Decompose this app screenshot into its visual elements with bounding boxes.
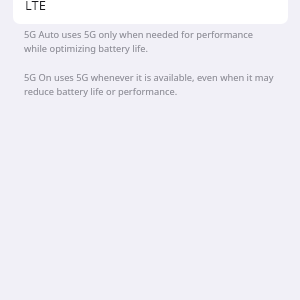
staticText: 5G On uses 5G whenever it is available, … bbox=[24, 71, 276, 98]
staticText: LTE bbox=[25, 0, 47, 14]
button[interactable]: LTE bbox=[13, 0, 288, 24]
staticText: 5G Auto uses 5G only when needed for per… bbox=[24, 28, 276, 55]
